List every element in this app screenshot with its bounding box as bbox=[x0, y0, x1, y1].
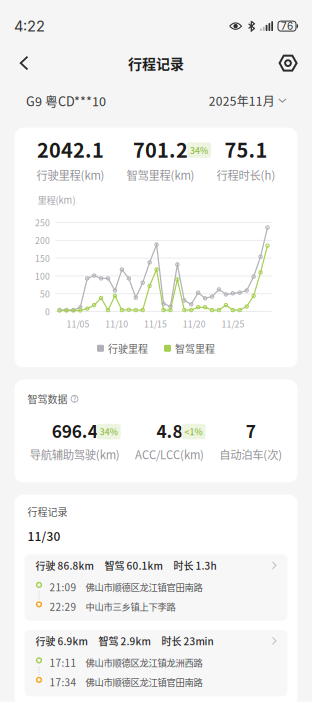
staticText: 250 bbox=[35, 216, 50, 229]
staticText: 34% bbox=[100, 425, 118, 438]
staticText: 50 bbox=[40, 287, 50, 300]
button[interactable]: 行驶 86.8km bbox=[24, 554, 287, 621]
staticText: 150 bbox=[35, 252, 50, 264]
button[interactable]: 2025年11月 bbox=[209, 85, 286, 116]
staticText: 里程(km) bbox=[37, 193, 75, 206]
staticText: 自动泊车(次) bbox=[219, 446, 282, 462]
staticText: 行驶 6.9km bbox=[35, 634, 87, 648]
staticText: 17:11 bbox=[49, 655, 76, 670]
staticText: 时长 23min bbox=[161, 634, 213, 648]
staticText: 时长 1.3h bbox=[173, 558, 216, 573]
staticText: 行驶里程(km) bbox=[36, 167, 104, 183]
staticText: 行程记录 bbox=[128, 53, 184, 73]
staticText: 11/30 bbox=[27, 527, 60, 544]
staticText: 佛山市顺德区龙江镇龙洲西路 bbox=[85, 656, 202, 669]
staticText: <1% bbox=[184, 425, 202, 438]
staticText: 佛山市顺德区龙江镇官田南路 bbox=[85, 675, 202, 689]
button[interactable]: 设置 bbox=[271, 46, 305, 80]
staticText: 17:34 bbox=[49, 675, 76, 689]
staticText: 智驾数据 bbox=[27, 391, 67, 406]
staticText: 701.2 bbox=[133, 135, 188, 164]
button[interactable]: 行驶 6.9km bbox=[24, 630, 287, 696]
staticText: ACC/LCC(km) bbox=[135, 446, 204, 462]
staticText: 4:22 bbox=[14, 17, 45, 35]
staticText: 22:29 bbox=[49, 599, 76, 614]
staticText: 0 bbox=[45, 305, 50, 318]
staticText: 200 bbox=[35, 234, 50, 246]
staticText: 2025年11月 bbox=[209, 92, 275, 109]
staticText: 11/10 bbox=[105, 317, 128, 330]
staticText: 4.8 bbox=[156, 418, 182, 443]
staticText: 导航辅助驾驶(km) bbox=[30, 446, 120, 462]
button[interactable]: 返回 bbox=[7, 46, 41, 80]
staticText: 佛山市顺德区龙江镇官田南路 bbox=[85, 580, 202, 594]
staticText: 696.4 bbox=[52, 418, 98, 443]
staticText: 11/15 bbox=[144, 317, 167, 330]
staticText: 行驶里程 bbox=[108, 341, 148, 356]
staticText: 中山市三乡镇上下李路 bbox=[85, 600, 175, 613]
staticText: 100 bbox=[35, 270, 50, 282]
staticText: 75.1 bbox=[224, 135, 267, 164]
staticText: 智驾里程 bbox=[175, 341, 215, 356]
staticText: 2042.1 bbox=[37, 135, 104, 164]
staticText: ? bbox=[72, 393, 76, 405]
staticText: 行驶 86.8km bbox=[35, 558, 93, 573]
staticText: 11/20 bbox=[183, 317, 206, 330]
staticText: 行程记录 bbox=[27, 504, 67, 519]
staticText: 11/25 bbox=[221, 317, 244, 330]
staticText: 11/05 bbox=[66, 317, 89, 330]
staticText: 21:09 bbox=[49, 580, 76, 594]
staticText: 76 bbox=[281, 20, 293, 32]
staticText: 智驾 60.1km bbox=[104, 558, 162, 573]
staticText: 智驾 2.9km bbox=[98, 634, 150, 648]
staticText: G9 粤CD***10 bbox=[26, 91, 106, 110]
staticText: 34% bbox=[190, 144, 208, 156]
staticText: 7 bbox=[246, 418, 256, 443]
staticText: 智驾里程(km) bbox=[126, 167, 194, 183]
button[interactable]: G9 粤CD***10 bbox=[26, 84, 106, 117]
staticText: 行程时长(h) bbox=[216, 167, 275, 183]
